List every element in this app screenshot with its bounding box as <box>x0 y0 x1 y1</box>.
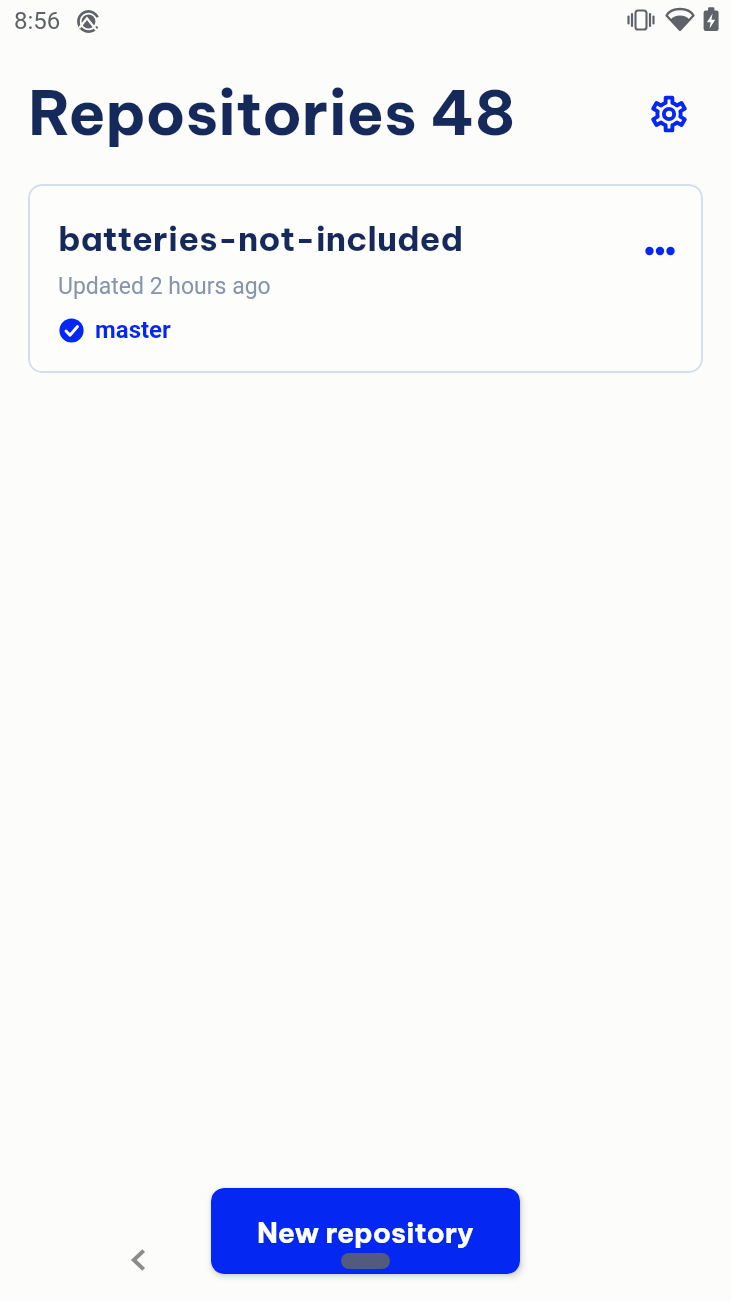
staticText: master <box>95 316 171 344</box>
staticText: New repository <box>257 1215 474 1250</box>
button[interactable]: New repository <box>211 1188 520 1274</box>
staticText: batteries-not-included <box>58 217 464 260</box>
button[interactable]: batteries-not-included <box>28 184 703 373</box>
button[interactable]: Settings <box>643 88 695 140</box>
staticText: Repositories 48 <box>28 74 516 151</box>
button[interactable]: Back <box>115 1236 163 1284</box>
button[interactable]: More options <box>634 225 686 277</box>
staticText: 8:56 <box>14 7 61 35</box>
staticText: Updated 2 hours ago <box>58 273 271 300</box>
